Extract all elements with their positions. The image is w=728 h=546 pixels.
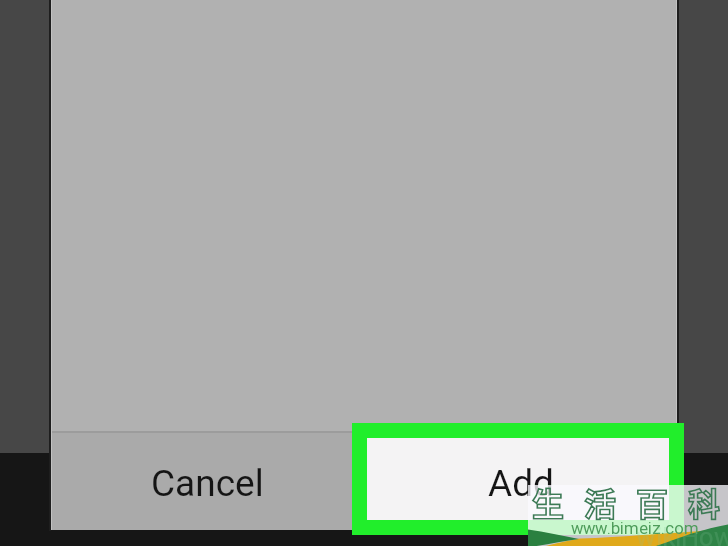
staticText: Add xyxy=(488,462,554,505)
button[interactable]: Add xyxy=(364,435,677,532)
button[interactable]: Cancel xyxy=(51,435,364,532)
staticText: Cancel xyxy=(151,462,264,505)
